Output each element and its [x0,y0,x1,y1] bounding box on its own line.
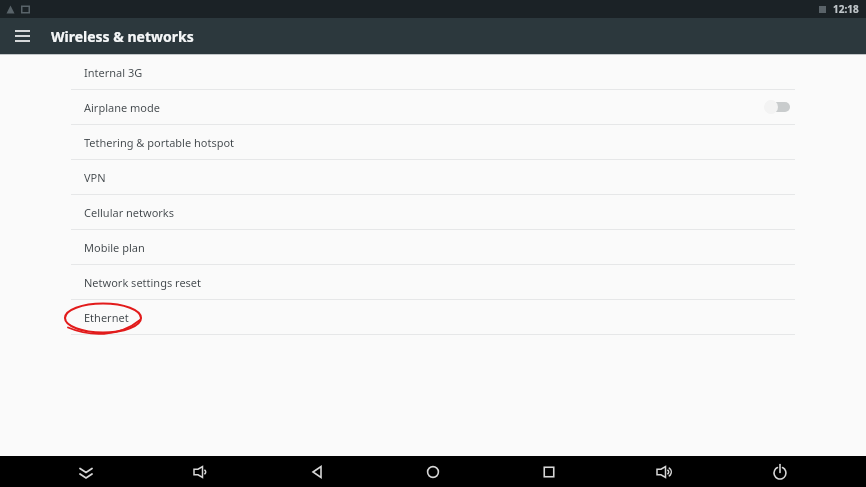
button[interactable]: Tethering & portable hotspot [0,125,866,160]
button[interactable]: Mobile plan [0,230,866,265]
button[interactable]: Volume down [172,456,232,487]
staticText: Mobile plan [84,240,145,255]
staticText: Ethernet [84,310,129,325]
staticText: Tethering & portable hotspot [84,135,235,150]
staticText: Wireless & networks [51,27,194,46]
button[interactable]: Home [403,456,463,487]
button[interactable]: Internal 3G [0,55,866,90]
staticText: Network settings reset [84,275,202,290]
staticText: VPN [84,170,106,185]
button[interactable]: Power [750,456,810,487]
button[interactable]: Volume up [635,456,695,487]
button[interactable]: Back [287,456,347,487]
button[interactable]: Recent apps [519,456,579,487]
button[interactable]: Open navigation menu [8,22,36,50]
button[interactable]: Cellular networks [0,195,866,230]
button[interactable]: Ethernet [0,300,866,335]
button[interactable]: Airplane mode [0,90,866,125]
button[interactable]: Network settings reset [0,265,866,300]
staticText: 12:18 [833,2,859,16]
staticText: Internal 3G [84,65,143,80]
staticText: Cellular networks [84,205,175,220]
button[interactable]: Hide navigation bar [56,456,116,487]
staticText: Airplane mode [84,100,160,115]
button[interactable]: VPN [0,160,866,195]
